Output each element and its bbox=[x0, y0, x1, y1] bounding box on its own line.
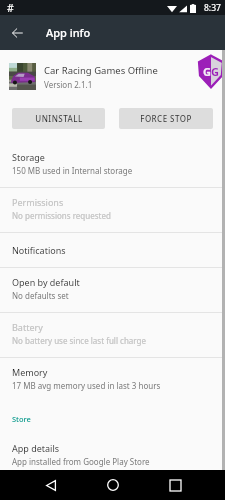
staticText: Notifications bbox=[12, 244, 66, 256]
staticText: No defaults set bbox=[12, 290, 69, 301]
staticText: # bbox=[7, 1, 14, 15]
staticText: No battery use since last full charge bbox=[12, 335, 146, 346]
staticText: Version 2.1.1 bbox=[44, 79, 93, 90]
staticText: Battery bbox=[12, 321, 43, 333]
staticText: App info bbox=[46, 25, 91, 40]
staticText: 8:37 bbox=[204, 2, 221, 14]
staticText: Store bbox=[12, 414, 31, 424]
staticText: Permissions bbox=[12, 196, 64, 208]
staticText: Storage bbox=[12, 151, 45, 163]
staticText: Car Racing Games Offline bbox=[44, 64, 158, 77]
button[interactable]: Open by default bbox=[0, 268, 225, 312]
button[interactable]: Recents bbox=[144, 470, 206, 500]
button[interactable]: Memory bbox=[0, 358, 225, 402]
staticText: No permissions requested bbox=[12, 210, 111, 221]
staticText: UNINSTALL bbox=[35, 113, 83, 124]
button[interactable]: UNINSTALL bbox=[12, 108, 105, 129]
button[interactable]: Notifications bbox=[0, 233, 225, 267]
button[interactable]: Permissions bbox=[0, 188, 225, 232]
staticText: App installed from Google Play Store bbox=[12, 456, 150, 467]
staticText: Open by default bbox=[12, 276, 80, 288]
staticText: G bbox=[211, 64, 219, 79]
button[interactable]: Battery bbox=[0, 313, 225, 357]
button[interactable]: FORCE STOP bbox=[119, 108, 213, 129]
button[interactable]: Home bbox=[82, 470, 144, 500]
staticText: FORCE STOP bbox=[140, 113, 192, 124]
staticText: 17 MB avg memory used in last 3 hours bbox=[12, 380, 161, 391]
staticText: App details bbox=[12, 442, 60, 454]
button[interactable]: Back bbox=[0, 15, 35, 50]
button[interactable]: App details bbox=[0, 441, 225, 470]
button[interactable]: Back bbox=[20, 470, 82, 500]
staticText: 150 MB used in Internal storage bbox=[12, 165, 133, 176]
staticText: Memory bbox=[12, 366, 48, 378]
button[interactable]: Storage bbox=[0, 143, 225, 187]
staticText: G bbox=[203, 64, 211, 79]
button[interactable]: App logo bbox=[198, 55, 224, 88]
